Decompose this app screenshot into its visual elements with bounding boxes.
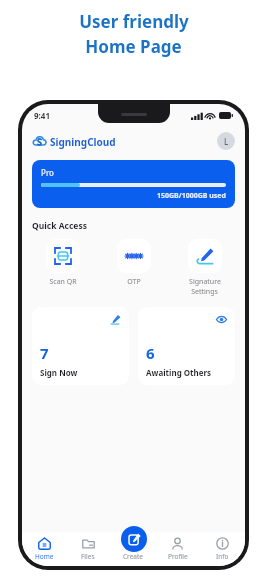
staticText: OTP: [127, 277, 141, 287]
other: Signature Settings: [195, 246, 215, 266]
staticText: Info: [216, 552, 229, 561]
button[interactable]: Info: [200, 532, 245, 566]
button[interactable]: Pro: [32, 160, 235, 208]
staticText: User friendly: [79, 10, 189, 33]
staticText: Sign Now: [40, 367, 78, 378]
staticText: Awaiting Others: [146, 367, 212, 378]
other: OTP: [124, 246, 144, 266]
button[interactable]: Create: [110, 532, 155, 566]
staticText: SigningCloud: [50, 135, 116, 149]
staticText: Profile: [168, 552, 188, 561]
staticText: Pro: [41, 167, 54, 178]
staticText: Quick Access: [32, 220, 87, 232]
button[interactable]: Profile avatar: [217, 132, 235, 150]
staticText: 6: [146, 343, 155, 363]
staticText: Files: [81, 552, 95, 561]
button[interactable]: 7: [32, 307, 129, 385]
staticText: Settings: [191, 287, 218, 297]
button[interactable]: OTP: [103, 239, 164, 287]
button[interactable]: 6: [138, 307, 235, 385]
staticText: Scan QR: [49, 277, 77, 287]
staticText: 150GB/1000GB used: [157, 191, 226, 201]
button[interactable]: Files: [66, 532, 110, 566]
button[interactable]: Profile: [155, 532, 200, 566]
staticText: 9:41: [34, 110, 50, 121]
staticText: Home: [35, 552, 54, 561]
button[interactable]: Scan QR: [32, 239, 93, 287]
button[interactable]: Home: [22, 532, 66, 566]
staticText: Create: [123, 552, 143, 561]
staticText: Signature: [189, 277, 221, 287]
staticText: 7: [40, 343, 49, 363]
button[interactable]: Create: [121, 526, 147, 552]
other: Scan QR: [53, 246, 73, 266]
staticText: Home Page: [85, 35, 182, 58]
button[interactable]: Signature Settings: [174, 239, 235, 297]
button[interactable]: SigningCloud: [32, 134, 116, 149]
staticText: L: [224, 136, 229, 147]
